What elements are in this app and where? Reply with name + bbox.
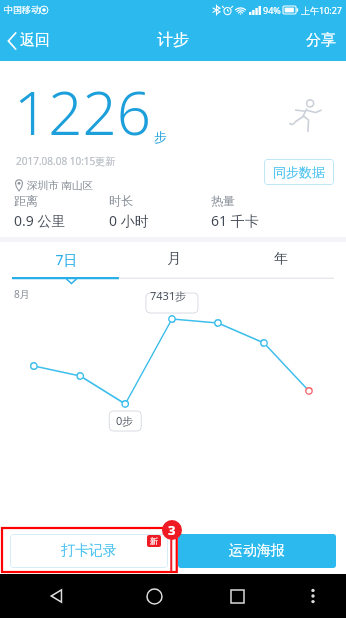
staticText: 94% <box>263 4 281 16</box>
button[interactable]: 返回 <box>0 25 58 56</box>
staticText: 距离 <box>14 193 38 208</box>
staticText: 时长 <box>109 193 133 208</box>
button[interactable]: 运动海报 <box>178 534 336 568</box>
button[interactable]: Back <box>0 574 113 618</box>
staticText: 步 <box>154 129 167 145</box>
staticText: 8月 <box>14 287 30 301</box>
staticText: 运动海报 <box>229 542 285 560</box>
button[interactable]: Recent apps <box>196 574 279 618</box>
staticText: 1226 <box>14 71 152 153</box>
staticText: 61 千卡 <box>211 211 259 230</box>
staticText: 计步 <box>157 30 189 50</box>
button[interactable]: 同步数据 <box>264 159 334 185</box>
staticText: 新 <box>150 536 158 546</box>
staticText: 同步数据 <box>273 164 325 180</box>
staticText: 返回 <box>20 31 50 50</box>
button[interactable]: 打卡记录 <box>10 534 168 568</box>
staticText: 年 <box>274 250 288 268</box>
staticText: 0.9 公里 <box>14 211 66 230</box>
button[interactable]: 分享 <box>296 25 346 56</box>
staticText: 0步 <box>116 413 134 428</box>
staticText: 上午10:27 <box>301 4 343 16</box>
staticText: 中国移动 <box>4 4 40 15</box>
staticText: 7日 <box>55 250 78 269</box>
staticText: 深圳市 南山区 <box>27 178 93 191</box>
staticText: 热量 <box>211 193 235 208</box>
staticText: 2017.08.08 10:15更新 <box>16 154 116 168</box>
button[interactable]: 年 <box>227 242 334 276</box>
staticText: 月 <box>167 250 181 268</box>
button[interactable]: 月 <box>120 242 227 276</box>
staticText: 7431步 <box>150 288 187 303</box>
staticText: 0 小时 <box>109 211 149 230</box>
staticText: 3 <box>168 521 176 539</box>
button[interactable]: Home <box>113 574 196 618</box>
staticText: 分享 <box>306 31 336 50</box>
staticText: 打卡记录 <box>61 542 117 560</box>
button[interactable]: 7日 <box>12 242 120 277</box>
button[interactable]: More options <box>279 574 346 618</box>
